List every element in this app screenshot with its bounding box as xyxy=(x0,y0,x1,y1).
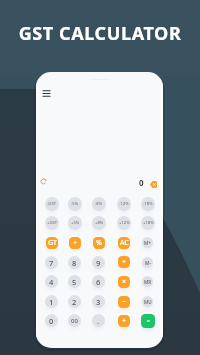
staticText: − xyxy=(122,297,127,307)
staticText: +18% xyxy=(143,220,154,226)
staticText: AC xyxy=(120,238,129,248)
button[interactable]: % xyxy=(93,237,105,249)
button[interactable]: + xyxy=(118,315,130,327)
staticText: ÷ xyxy=(73,238,78,248)
button[interactable]: 2 xyxy=(68,295,81,308)
staticText: M+ xyxy=(144,240,151,246)
button[interactable]: 8 xyxy=(68,256,81,269)
button[interactable]: GT xyxy=(46,237,58,249)
button[interactable]: 0 xyxy=(45,314,58,327)
staticText: -GST xyxy=(47,201,57,207)
staticText: M- xyxy=(145,260,151,266)
button[interactable]: +5% xyxy=(68,216,82,230)
button[interactable]: 1 xyxy=(45,295,58,308)
button[interactable]: MR xyxy=(142,276,153,287)
staticText: -18% xyxy=(143,201,153,207)
staticText: +GST xyxy=(47,220,58,226)
button[interactable]: × xyxy=(118,276,130,288)
staticText: GST CALCULATOR xyxy=(0,21,200,46)
staticText: + xyxy=(122,316,127,326)
button[interactable]: 00 xyxy=(68,314,81,327)
staticText: +5% xyxy=(71,220,80,226)
button[interactable]: +GST xyxy=(45,216,59,230)
staticText: % xyxy=(96,238,102,248)
staticText: × xyxy=(122,277,127,287)
button[interactable]: ÷ xyxy=(118,256,130,268)
button[interactable]: M- xyxy=(142,257,153,268)
button[interactable]: 4 xyxy=(45,275,58,288)
staticText: -5% xyxy=(71,201,79,207)
button[interactable]: -12% xyxy=(117,197,131,211)
staticText: 8 xyxy=(72,258,77,268)
button[interactable]: -5% xyxy=(68,197,82,211)
staticText: ÷ xyxy=(122,257,127,267)
staticText: 2 xyxy=(72,297,77,307)
staticText: = xyxy=(147,318,150,324)
button[interactable]: -18% xyxy=(141,197,155,211)
button[interactable]: -GST xyxy=(45,197,59,211)
button[interactable]: 5 xyxy=(68,275,81,288)
staticText: -12% xyxy=(119,201,129,207)
button[interactable]: ÷ xyxy=(69,237,81,249)
staticText: 0 xyxy=(139,177,144,188)
button[interactable]: +8% xyxy=(92,216,106,230)
staticText: MU xyxy=(144,299,152,305)
staticText: +12% xyxy=(119,220,130,226)
button[interactable]: MU xyxy=(142,296,153,307)
staticText: +8% xyxy=(95,220,104,226)
staticText: -8% xyxy=(95,201,103,207)
button[interactable]: -8% xyxy=(92,197,106,211)
button[interactable]: − xyxy=(118,296,130,308)
staticText: 00 xyxy=(71,317,78,325)
button[interactable]: Backspace xyxy=(150,181,157,188)
button[interactable]: AC xyxy=(118,237,130,249)
button[interactable]: M+ xyxy=(142,237,153,248)
staticText: GT xyxy=(48,238,57,248)
button[interactable]: 6 xyxy=(92,275,105,288)
staticText: 5 xyxy=(72,277,77,287)
staticText: 3 xyxy=(96,297,101,307)
button[interactable]: +18% xyxy=(141,216,155,230)
button[interactable]: . xyxy=(92,314,105,327)
staticText: 0 xyxy=(49,316,54,326)
staticText: 6 xyxy=(96,277,101,287)
staticText: MR xyxy=(144,279,152,285)
button[interactable]: = xyxy=(141,314,155,328)
button[interactable]: 7 xyxy=(45,256,58,269)
button[interactable]: 3 xyxy=(92,295,105,308)
staticText: 4 xyxy=(49,277,54,287)
staticText: 1 xyxy=(49,297,54,307)
button[interactable]: +12% xyxy=(117,216,131,230)
button[interactable]: Menu xyxy=(43,90,50,97)
button[interactable]: History xyxy=(40,178,47,185)
staticText: 7 xyxy=(49,258,54,268)
staticText: 9 xyxy=(96,258,101,268)
staticText: . xyxy=(97,316,100,326)
button[interactable]: 9 xyxy=(92,256,105,269)
